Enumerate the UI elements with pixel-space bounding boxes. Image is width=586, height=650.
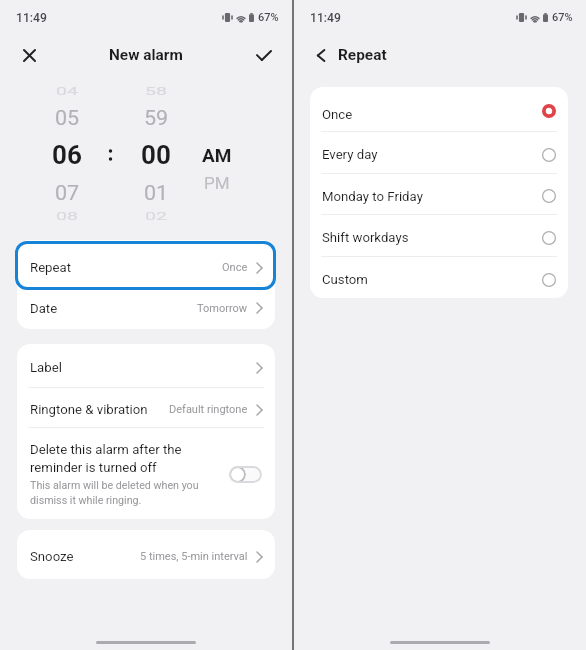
staticText: Delete this alarm after the reminder is … [30, 442, 182, 475]
staticText: Date [30, 301, 58, 316]
staticText: PM [204, 173, 230, 193]
button[interactable]: Custom [310, 257, 568, 298]
staticText: 59 [144, 106, 169, 129]
staticText: 04 [56, 85, 78, 98]
staticText: Shift workdays [322, 230, 409, 245]
staticText: 06 [52, 140, 82, 170]
staticText: Repeat [338, 46, 387, 64]
staticText: 05 [55, 106, 80, 129]
staticText: Ringtone & vibration [30, 402, 148, 417]
button[interactable]: Repeat [17, 240, 275, 291]
staticText: 00 [141, 140, 171, 170]
button[interactable]: Delete this alarm after the reminder is … [229, 466, 262, 483]
staticText: 5 times, 5-min interval [140, 550, 248, 563]
staticText: Repeat [30, 260, 72, 275]
staticText: AM [202, 144, 232, 166]
staticText: Snooze [30, 549, 74, 564]
staticText: 58 [145, 85, 167, 98]
button[interactable]: Delete this alarm after the reminder is … [17, 428, 275, 519]
staticText: Tomorrow [197, 302, 248, 315]
staticText: Monday to Friday [322, 189, 423, 204]
staticText: New alarm [109, 46, 183, 64]
staticText: 08 [56, 210, 78, 223]
button[interactable]: Every day [310, 132, 568, 173]
button[interactable]: Label [17, 344, 275, 387]
staticText: 11:49 [310, 11, 341, 25]
staticText: 11:49 [16, 11, 47, 25]
staticText: Once [322, 107, 353, 122]
button[interactable]: Ringtone & vibration [17, 388, 275, 427]
staticText: 02 [145, 210, 167, 223]
staticText: 01 [144, 181, 169, 204]
staticText: Default ringtone [169, 403, 248, 416]
button[interactable]: AM [195, 142, 239, 168]
staticText: 07 [55, 181, 80, 204]
button[interactable]: Snooze [17, 530, 275, 579]
staticText: Every day [322, 147, 378, 162]
button[interactable]: Close [13, 39, 45, 71]
button[interactable]: Date [17, 291, 275, 329]
button[interactable]: Save alarm [248, 39, 280, 71]
staticText: Custom [322, 272, 368, 287]
button[interactable]: Monday to Friday [310, 174, 568, 214]
button[interactable]: Shift workdays [310, 215, 568, 256]
staticText: Label [30, 360, 62, 375]
staticText: This alarm will be deleted when you dism… [30, 479, 199, 506]
staticText: 67% [258, 11, 279, 24]
staticText: 67% [552, 11, 573, 24]
button[interactable]: Back [307, 41, 335, 69]
staticText: Once [222, 261, 248, 274]
button[interactable]: PM [195, 172, 239, 194]
button[interactable]: Once [310, 87, 568, 131]
